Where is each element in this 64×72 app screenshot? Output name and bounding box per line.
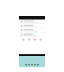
button[interactable] — [19, 33, 45, 37]
button[interactable] — [19, 28, 45, 33]
button[interactable] — [19, 24, 45, 28]
button[interactable] — [19, 19, 45, 24]
